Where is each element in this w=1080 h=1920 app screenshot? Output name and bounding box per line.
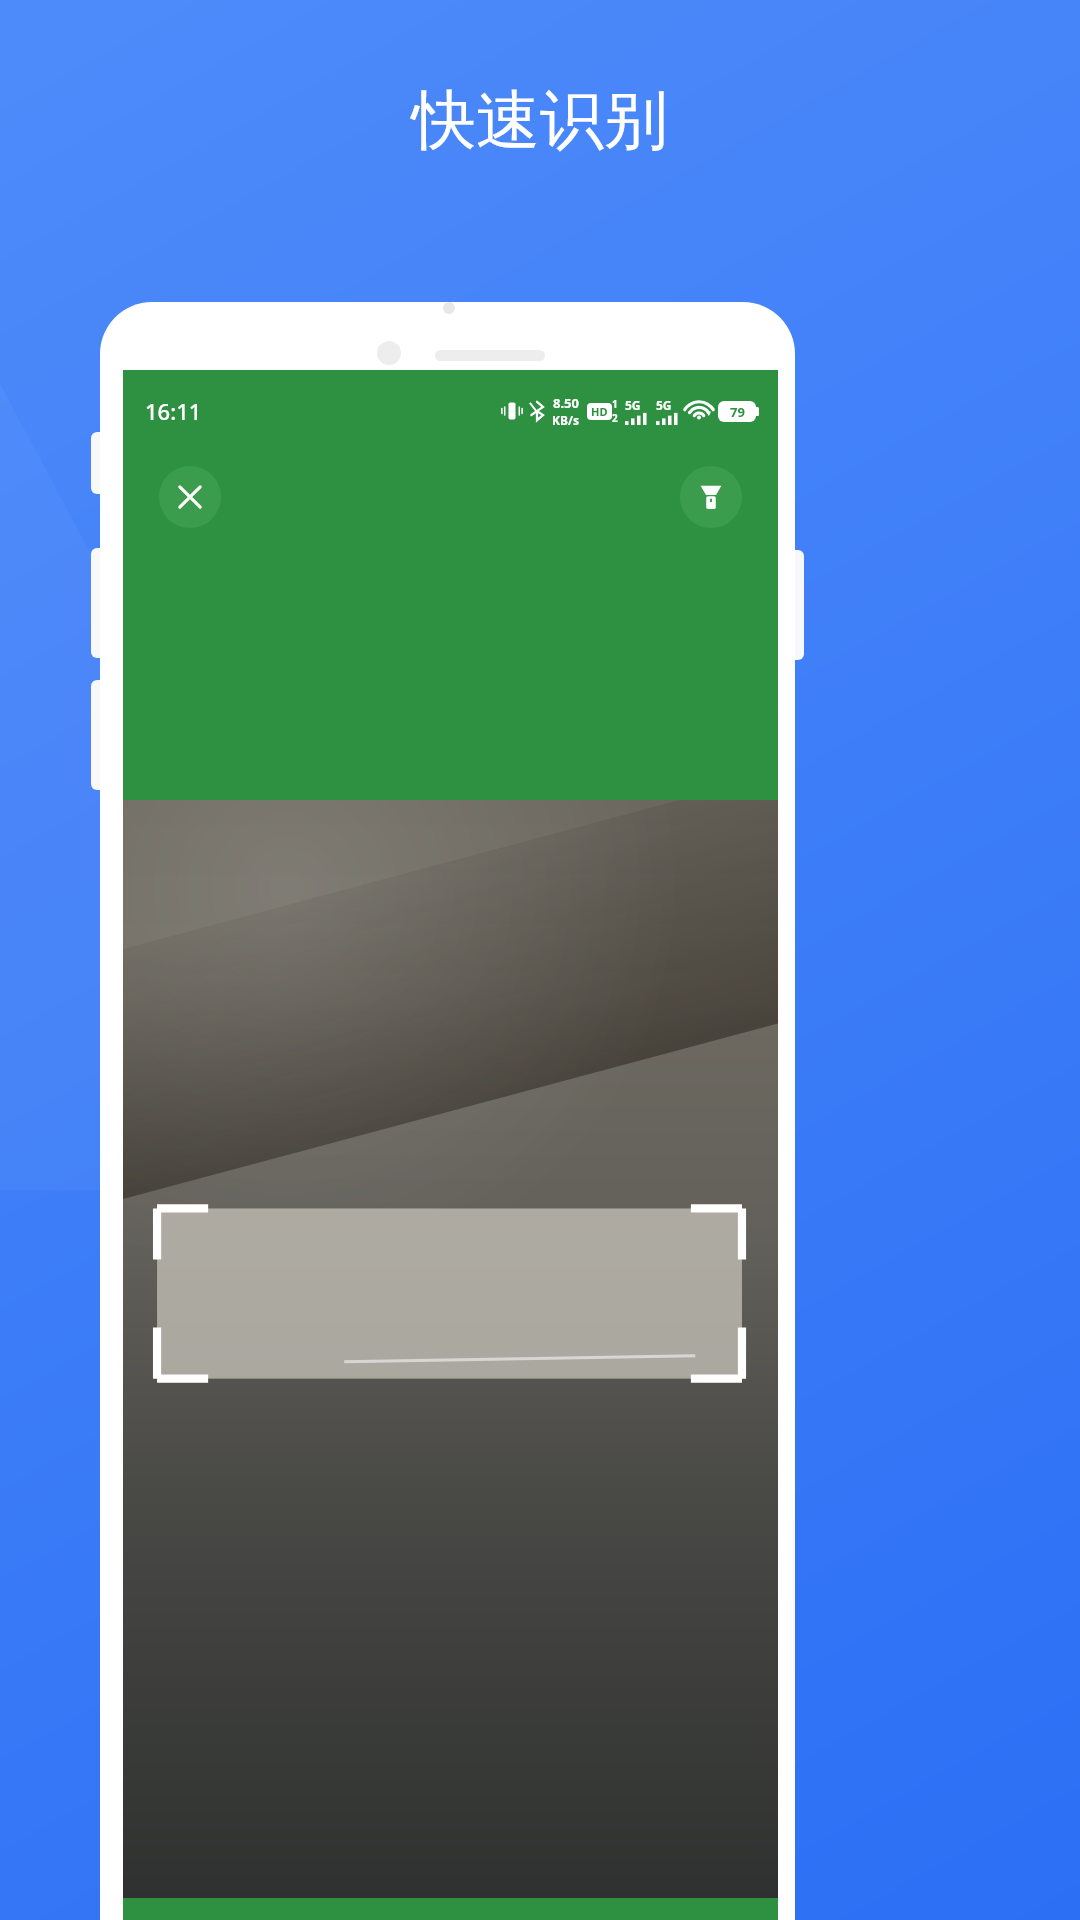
staticText: 5G <box>656 397 672 413</box>
staticText: 8.50 <box>553 394 579 412</box>
staticText: 79 <box>730 403 745 421</box>
staticText: 2 <box>612 411 618 425</box>
staticText: 5G <box>625 397 641 413</box>
button[interactable]: Flashlight <box>680 466 742 528</box>
staticText: HD <box>591 404 608 419</box>
staticText: KB/s <box>552 412 579 428</box>
staticText: 1 <box>612 397 618 411</box>
button[interactable]: Close <box>159 466 221 528</box>
staticText: 16:11 <box>145 396 202 426</box>
staticText: 快速识别 <box>412 80 668 161</box>
